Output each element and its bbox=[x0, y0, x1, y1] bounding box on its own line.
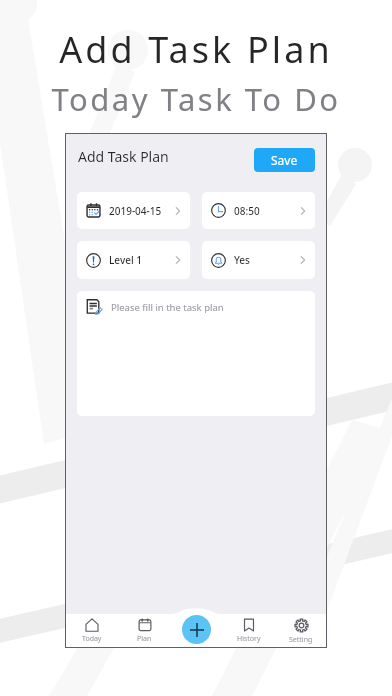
button[interactable]: Today bbox=[65, 614, 118, 648]
staticText: Save bbox=[271, 152, 298, 168]
button[interactable]: Please fill in the task plan bbox=[77, 291, 315, 416]
button[interactable]: Level 1 bbox=[77, 241, 190, 279]
staticText: Today Task To Do bbox=[51, 78, 341, 120]
button[interactable]: Setting bbox=[275, 614, 327, 648]
button[interactable]: Yes bbox=[202, 241, 315, 279]
staticText: Plan bbox=[137, 634, 152, 644]
staticText: 08:50 bbox=[234, 204, 260, 218]
staticText: History bbox=[237, 634, 261, 644]
staticText: Please fill in the task plan bbox=[111, 301, 224, 314]
staticText: Today bbox=[82, 634, 102, 644]
button[interactable]: 08:50 bbox=[202, 192, 315, 229]
staticText: Yes bbox=[234, 253, 250, 267]
staticText: Add Task Plan bbox=[59, 25, 333, 74]
button[interactable]: Add task bbox=[182, 615, 211, 644]
button[interactable]: Save bbox=[254, 148, 315, 172]
staticText: 2019-04-15 bbox=[109, 204, 162, 218]
button[interactable]: Plan bbox=[118, 614, 171, 648]
button[interactable]: 2019-04-15 bbox=[77, 192, 190, 229]
staticText: Level 1 bbox=[109, 253, 142, 267]
staticText: Setting bbox=[289, 635, 313, 645]
staticText: Add Task Plan bbox=[78, 147, 169, 166]
button[interactable]: History bbox=[223, 614, 275, 648]
